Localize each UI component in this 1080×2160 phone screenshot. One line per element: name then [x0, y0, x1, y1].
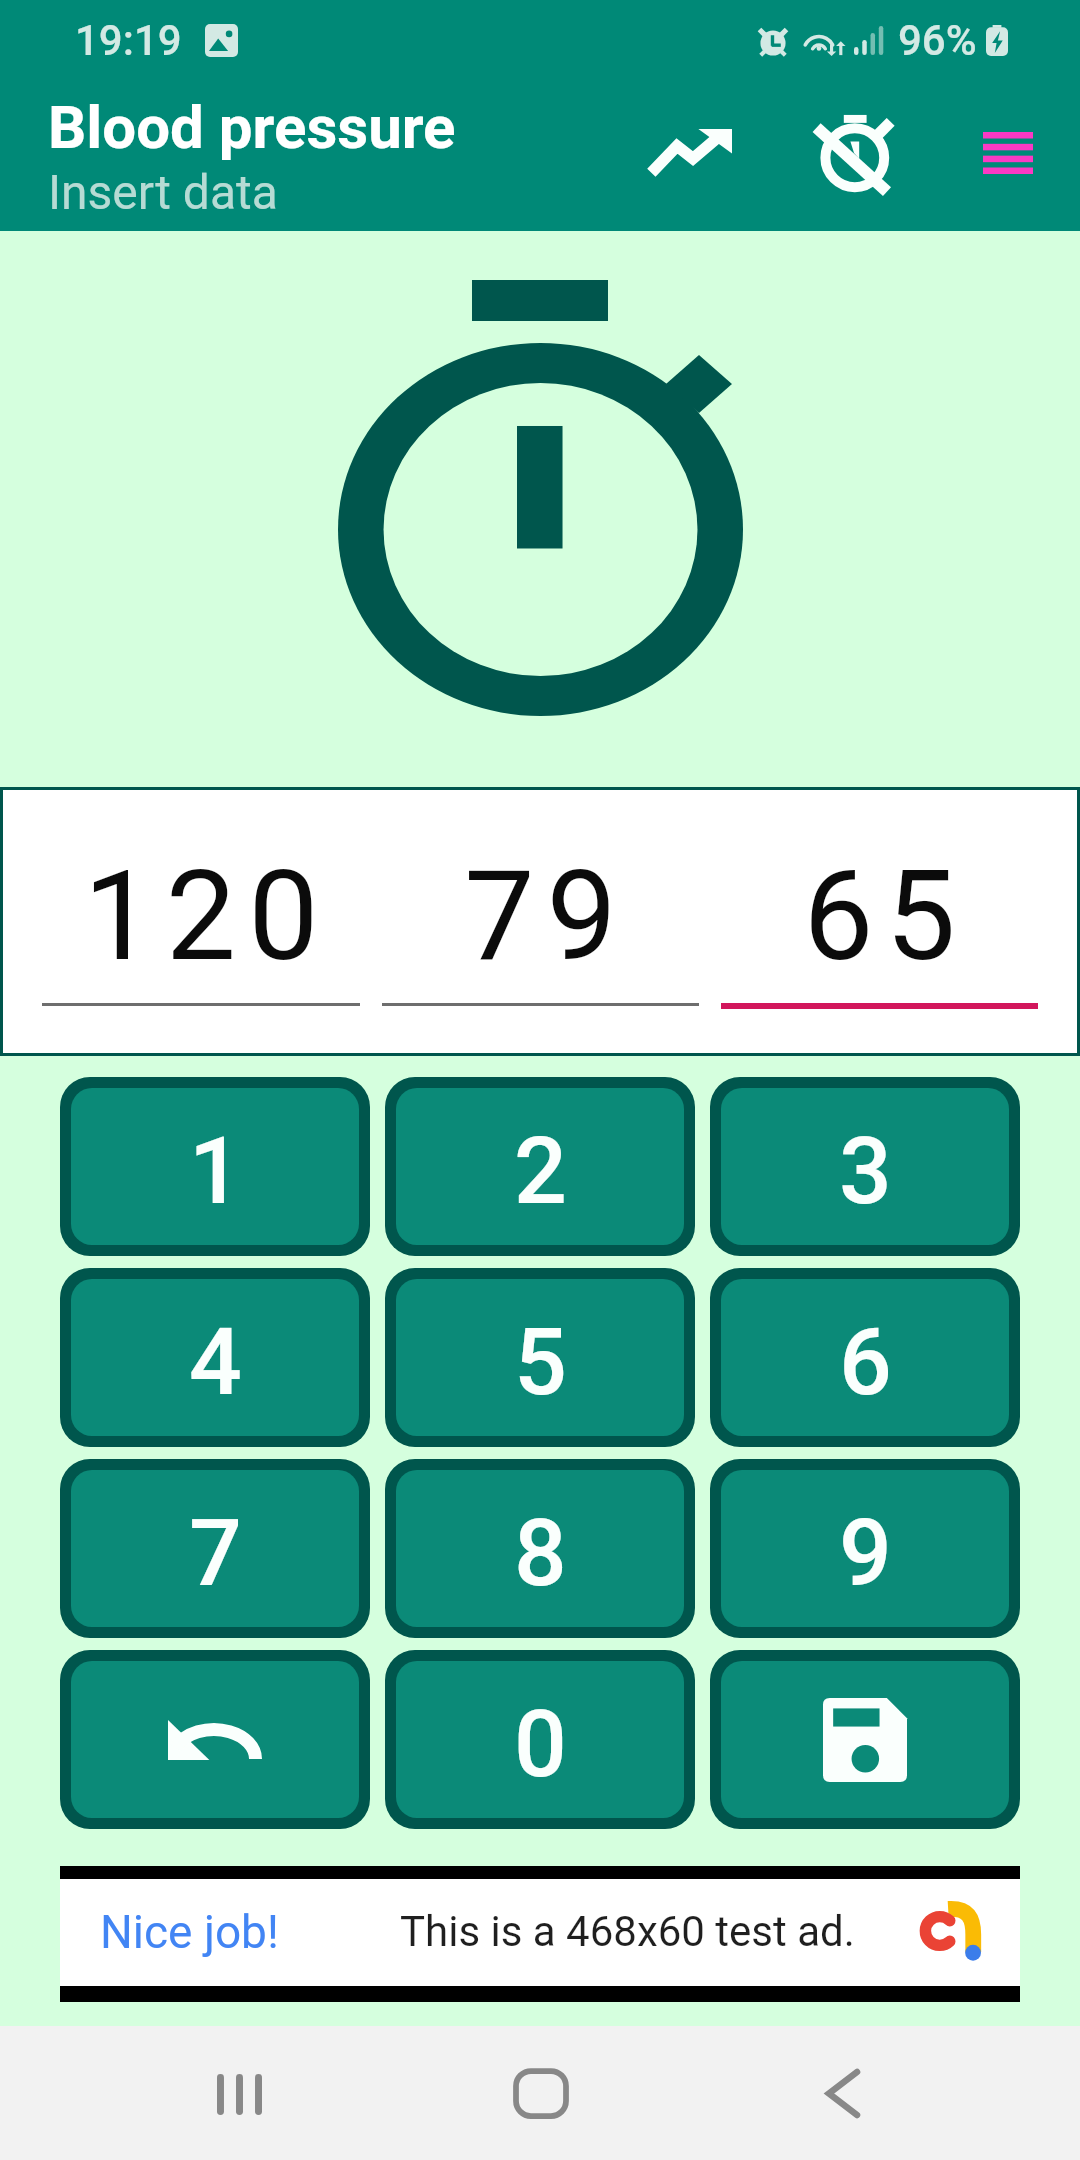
staticText: Nice job!	[100, 1905, 279, 1959]
button[interactable]: 6	[721, 1279, 1009, 1436]
staticText: 5	[514, 1308, 567, 1417]
button[interactable]: 1	[71, 1088, 359, 1245]
staticText: 3	[839, 1117, 892, 1226]
staticText: 2	[514, 1117, 567, 1226]
staticText: 120	[48, 843, 366, 989]
button[interactable]: 8	[396, 1470, 684, 1627]
button[interactable]: Menu	[938, 98, 1078, 208]
button[interactable]: 65	[721, 790, 1038, 1053]
button[interactable]: 0	[396, 1661, 684, 1818]
button[interactable]: 3	[721, 1088, 1009, 1245]
staticText: 4	[189, 1308, 242, 1417]
staticText: 1	[189, 1117, 242, 1226]
button[interactable]: 4	[71, 1279, 359, 1436]
staticText: 9	[839, 1499, 892, 1608]
staticText: 0	[514, 1690, 567, 1799]
staticText: This is a 468x60 test ad.	[400, 1907, 855, 1956]
button[interactable]: Save	[721, 1661, 1009, 1818]
staticText: Insert data	[48, 164, 278, 220]
staticText: 6	[839, 1308, 892, 1417]
staticText: 7	[189, 1499, 242, 1608]
button[interactable]: 2	[396, 1088, 684, 1245]
button[interactable]: 120	[42, 790, 360, 1053]
staticText: Blood pressure	[48, 92, 456, 162]
staticText: 8	[514, 1499, 567, 1608]
button[interactable]: Home	[471, 2026, 611, 2160]
button[interactable]: Back	[773, 2026, 913, 2160]
button[interactable]: Undo	[71, 1661, 359, 1818]
staticText: 79	[388, 843, 705, 989]
button[interactable]: 79	[382, 790, 699, 1053]
button[interactable]: 5	[396, 1279, 684, 1436]
button[interactable]: 7	[71, 1470, 359, 1627]
button[interactable]: Statistics	[620, 97, 760, 207]
staticText: 65	[727, 843, 1044, 989]
button[interactable]: Recents	[169, 2026, 309, 2160]
button[interactable]: 9	[721, 1470, 1009, 1627]
button[interactable]: Timer off	[785, 98, 925, 208]
staticText: 19:19	[75, 16, 182, 65]
staticText: 96%	[898, 16, 977, 65]
